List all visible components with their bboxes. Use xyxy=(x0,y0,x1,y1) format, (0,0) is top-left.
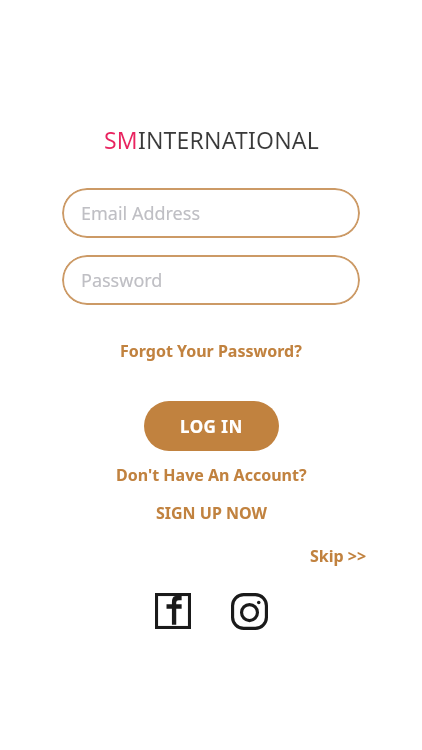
button[interactable]: Skip >> xyxy=(304,541,373,571)
staticText: Don't Have An Account? xyxy=(116,464,307,486)
button[interactable]: Facebook xyxy=(153,591,193,631)
staticText: Skip >> xyxy=(310,545,367,567)
button[interactable]: Email Address xyxy=(62,188,360,238)
staticText: Password xyxy=(81,268,163,293)
staticText: LOG IN xyxy=(180,415,243,438)
staticText: Email Address xyxy=(81,201,201,226)
button[interactable]: Don't Have An Account? xyxy=(108,459,315,491)
button[interactable]: LOG IN xyxy=(144,401,279,451)
button[interactable]: Instagram xyxy=(229,591,269,631)
staticText: SMINTERNATIONAL xyxy=(104,124,319,155)
button[interactable]: Forgot Your Password? xyxy=(112,335,310,367)
button[interactable]: SIGN UP NOW xyxy=(148,497,275,529)
staticText: Forgot Your Password? xyxy=(120,340,302,362)
staticText: SIGN UP NOW xyxy=(156,502,267,524)
button[interactable]: Password xyxy=(62,255,360,305)
